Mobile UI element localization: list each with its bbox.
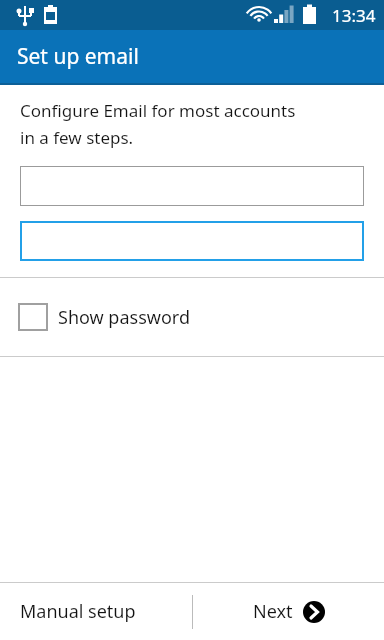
staticText: Configure Email for most accounts in a f… xyxy=(20,99,296,149)
other: Next xyxy=(303,601,325,623)
staticText: Show password xyxy=(58,305,190,330)
staticText: 13:34 xyxy=(332,4,376,27)
button[interactable]: Next xyxy=(193,583,384,640)
button[interactable] xyxy=(20,221,364,261)
button[interactable]: Manual setup xyxy=(0,583,192,640)
staticText: Next xyxy=(253,599,293,624)
staticText: Set up email xyxy=(17,42,139,71)
button[interactable]: Show password xyxy=(0,278,384,356)
staticText: Manual setup xyxy=(20,599,136,624)
button[interactable] xyxy=(20,166,364,206)
